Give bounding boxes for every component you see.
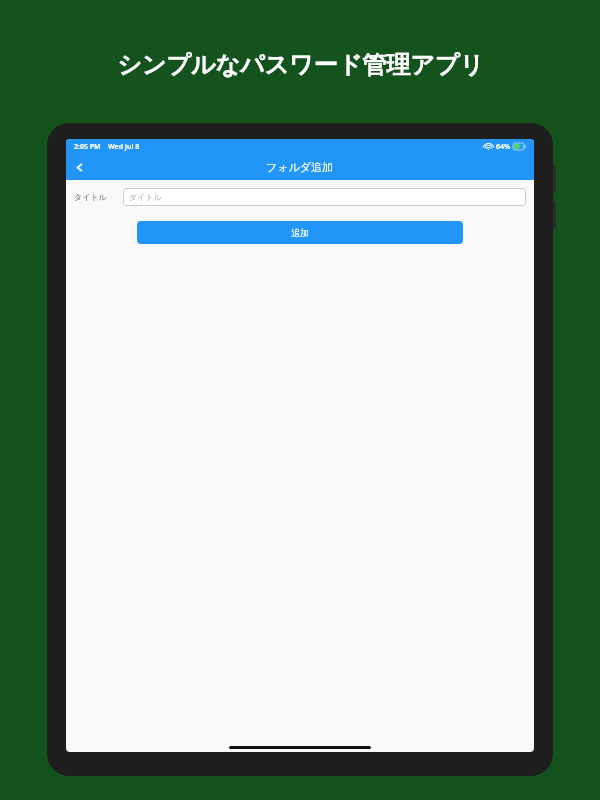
staticText: 64% — [496, 142, 511, 152]
staticText: 2:05 PM — [74, 142, 101, 152]
staticText: タイトル — [129, 192, 162, 202]
staticText: フォルダ追加 — [266, 160, 334, 174]
button[interactable]: タイトル — [123, 188, 526, 206]
staticText: タイトル — [74, 192, 107, 202]
staticText: Wed Jul 8 — [108, 142, 140, 152]
staticText: シンプルなパスワード管理アプリ — [117, 50, 484, 80]
staticText: 追加 — [291, 227, 309, 238]
button[interactable]: 追加 — [137, 221, 463, 244]
button[interactable]: Back — [66, 154, 92, 180]
